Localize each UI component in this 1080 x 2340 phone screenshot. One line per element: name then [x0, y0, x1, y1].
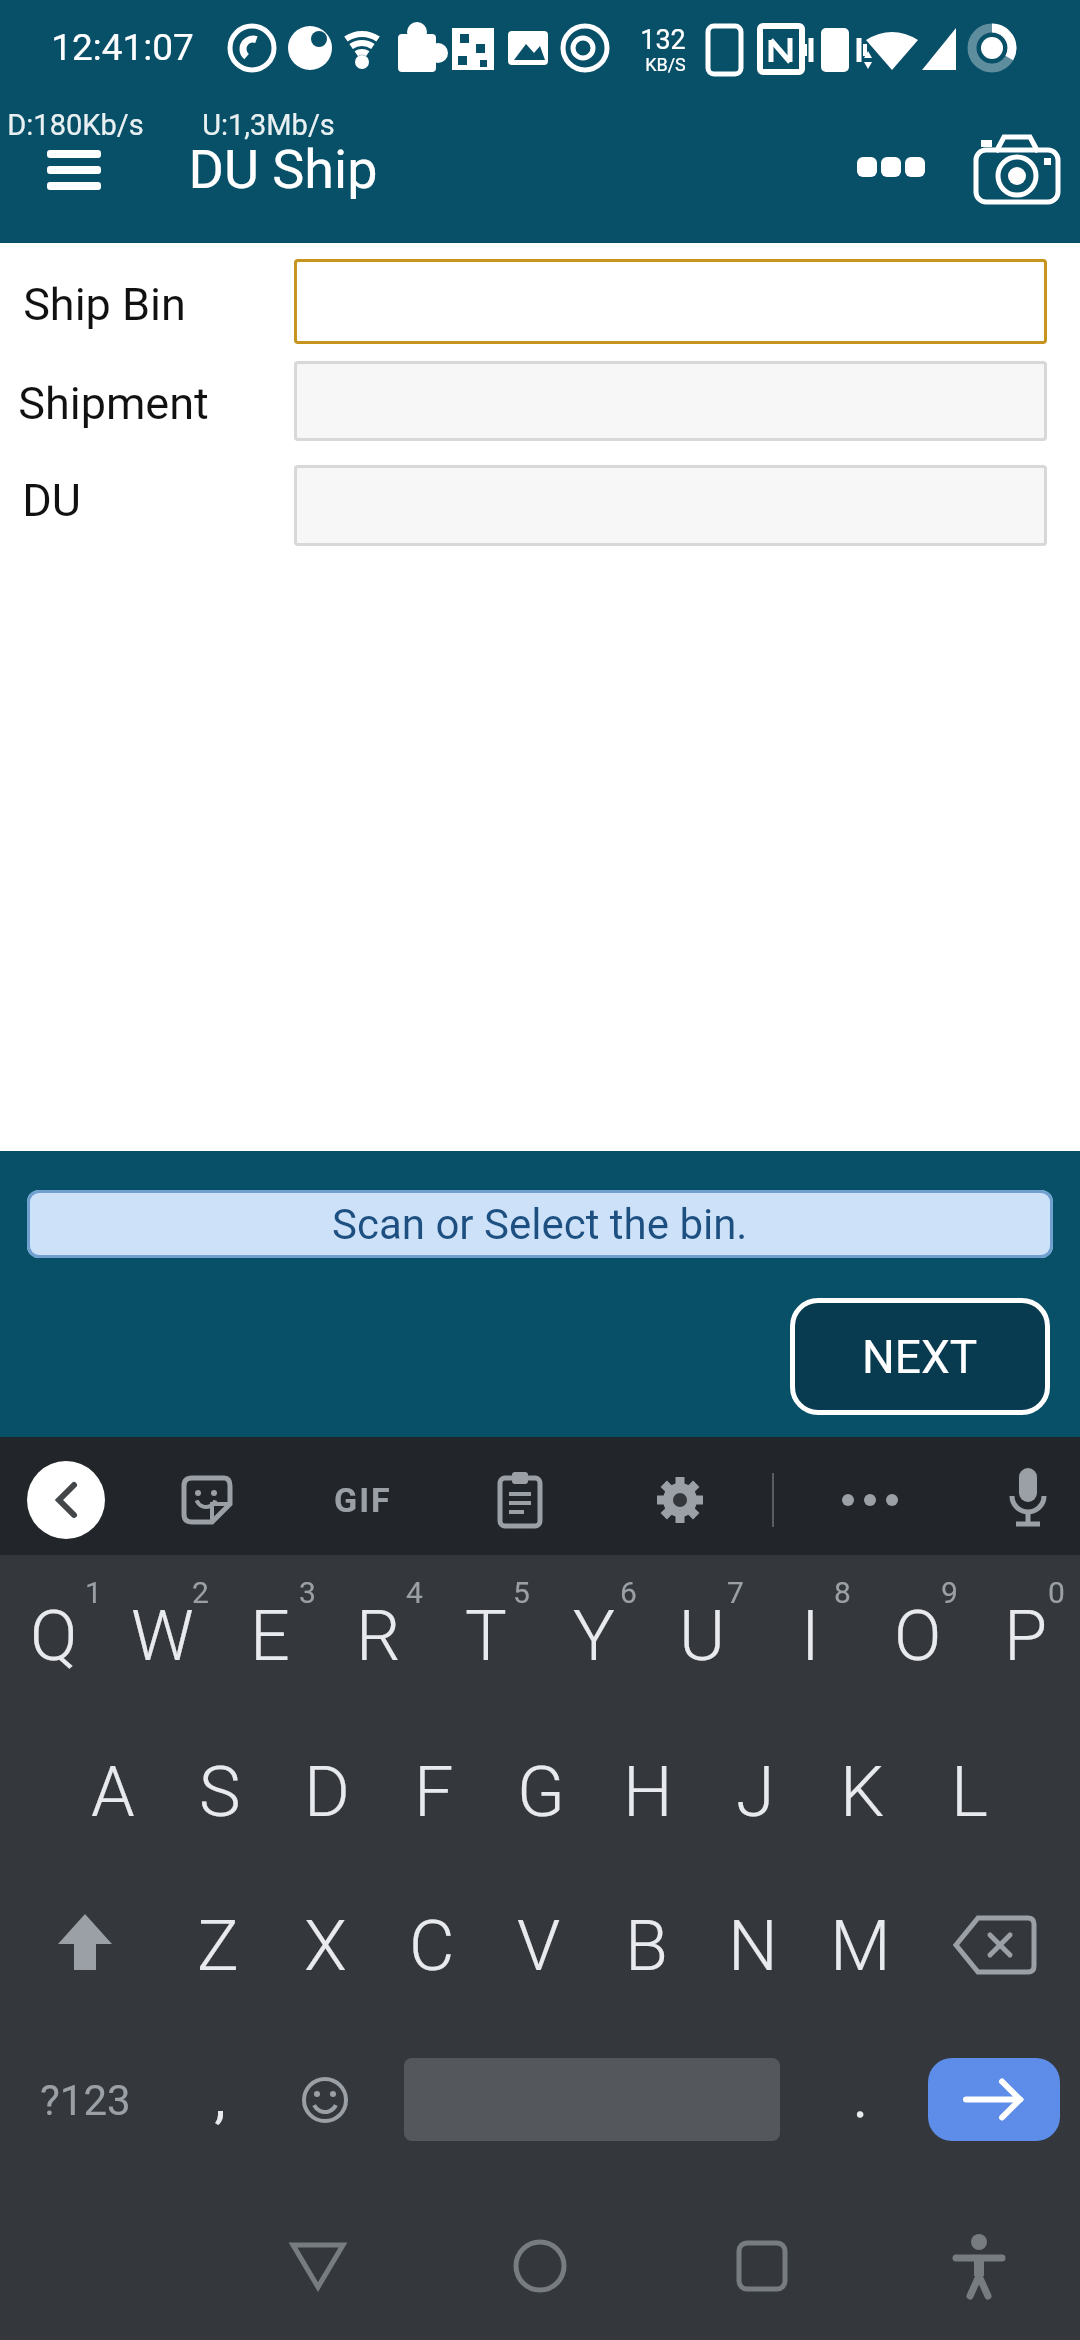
staticText: NEXT: [862, 1330, 978, 1384]
staticText: 3: [299, 1575, 316, 1610]
staticText: X: [304, 1905, 347, 1987]
button[interactable]: N: [699, 1896, 807, 1996]
staticText: S: [199, 1751, 241, 1833]
button[interactable]: [1002, 1466, 1054, 1534]
staticText: KB/S: [645, 54, 686, 75]
button[interactable]: [40, 1906, 130, 1986]
button[interactable]: [654, 1474, 706, 1526]
staticText: 6: [620, 1575, 637, 1610]
button[interactable]: M: [806, 1896, 914, 1996]
staticText: P: [1004, 1595, 1048, 1677]
staticText: L: [951, 1751, 988, 1833]
staticText: 5: [513, 1575, 530, 1610]
staticText: W: [131, 1595, 194, 1677]
staticText: M: [830, 1905, 891, 1987]
button[interactable]: J: [701, 1742, 809, 1842]
staticText: Scan or Select the bin.: [332, 1200, 748, 1249]
button[interactable]: C: [378, 1896, 486, 1996]
staticText: ?123: [40, 2076, 131, 2125]
staticText: D: [304, 1751, 350, 1833]
staticText: J: [736, 1751, 775, 1833]
button[interactable]: G: [487, 1742, 595, 1842]
staticText: Ship Bin: [23, 278, 186, 331]
button[interactable]: X: [271, 1896, 379, 1996]
button[interactable]: Y: [540, 1586, 648, 1686]
staticText: E: [250, 1595, 290, 1677]
staticText: 12:41:07: [51, 26, 194, 69]
staticText: GIF: [334, 1480, 392, 1520]
button[interactable]: D: [273, 1742, 381, 1842]
button[interactable]: P: [972, 1586, 1080, 1686]
staticText: H: [623, 1751, 673, 1833]
staticText: .: [853, 2065, 868, 2131]
staticText: I: [801, 1595, 820, 1677]
button[interactable]: [948, 1906, 1040, 1986]
button[interactable]: B: [592, 1896, 700, 1996]
staticText: O: [894, 1595, 942, 1677]
button[interactable]: R: [324, 1586, 432, 1686]
button[interactable]: H: [594, 1742, 702, 1842]
button[interactable]: [836, 1486, 904, 1514]
button[interactable]: [27, 1461, 105, 1539]
button[interactable]: I: [756, 1586, 864, 1686]
staticText: Shipment: [18, 377, 209, 430]
button[interactable]: [972, 132, 1064, 208]
button[interactable]: L: [915, 1742, 1023, 1842]
staticText: N: [728, 1905, 778, 1987]
staticText: T: [465, 1595, 507, 1677]
staticText: C: [409, 1905, 455, 1987]
staticText: 7: [727, 1575, 744, 1610]
button[interactable]: [928, 2058, 1060, 2141]
button[interactable]: [509, 2235, 571, 2297]
button[interactable]: NEXT: [790, 1298, 1050, 1415]
button[interactable]: W: [108, 1586, 216, 1686]
button[interactable]: [294, 259, 1047, 344]
staticText: D:180Kb/s: [7, 108, 144, 142]
staticText: 132: [640, 24, 686, 56]
button[interactable]: [294, 361, 1047, 441]
staticText: Y: [573, 1595, 615, 1677]
button[interactable]: [180, 1473, 234, 1527]
staticText: F: [414, 1751, 454, 1833]
staticText: V: [517, 1905, 561, 1987]
button[interactable]: [300, 2075, 350, 2125]
staticText: U:1,3Mb/s: [202, 108, 335, 142]
staticText: Q: [30, 1595, 78, 1677]
button[interactable]: F: [380, 1742, 488, 1842]
staticText: B: [625, 1905, 668, 1987]
staticText: Z: [197, 1905, 239, 1987]
button[interactable]: ?123: [30, 2055, 140, 2145]
button[interactable]: [287, 2235, 349, 2297]
staticText: 2: [192, 1575, 209, 1610]
button[interactable]: U: [648, 1586, 756, 1686]
staticText: 1: [85, 1575, 102, 1610]
staticText: 0: [1048, 1575, 1065, 1610]
staticText: DU: [22, 474, 81, 527]
staticText: K: [840, 1751, 885, 1833]
button[interactable]: S: [166, 1742, 274, 1842]
button[interactable]: [731, 2235, 793, 2297]
button[interactable]: O: [864, 1586, 972, 1686]
staticText: 9: [941, 1575, 958, 1610]
button[interactable]: T: [432, 1586, 540, 1686]
button[interactable]: [294, 465, 1047, 546]
button[interactable]: Z: [164, 1896, 272, 1996]
button[interactable]: K: [808, 1742, 916, 1842]
staticText: DU Ship: [188, 138, 378, 201]
button[interactable]: [30, 140, 120, 200]
button[interactable]: [948, 2232, 1010, 2300]
staticText: U: [679, 1595, 726, 1677]
staticText: G: [517, 1751, 565, 1833]
button[interactable]: A: [59, 1742, 167, 1842]
staticText: A: [91, 1751, 135, 1833]
button[interactable]: [494, 1470, 546, 1530]
button[interactable]: [850, 150, 932, 190]
button[interactable]: E: [216, 1586, 324, 1686]
button[interactable]: Q: [0, 1586, 108, 1686]
button[interactable]: GIF: [325, 1475, 401, 1525]
staticText: 8: [834, 1575, 851, 1610]
staticText: R: [356, 1595, 401, 1677]
button[interactable]: V: [485, 1896, 593, 1996]
button[interactable]: Scan or Select the bin.: [27, 1190, 1053, 1258]
